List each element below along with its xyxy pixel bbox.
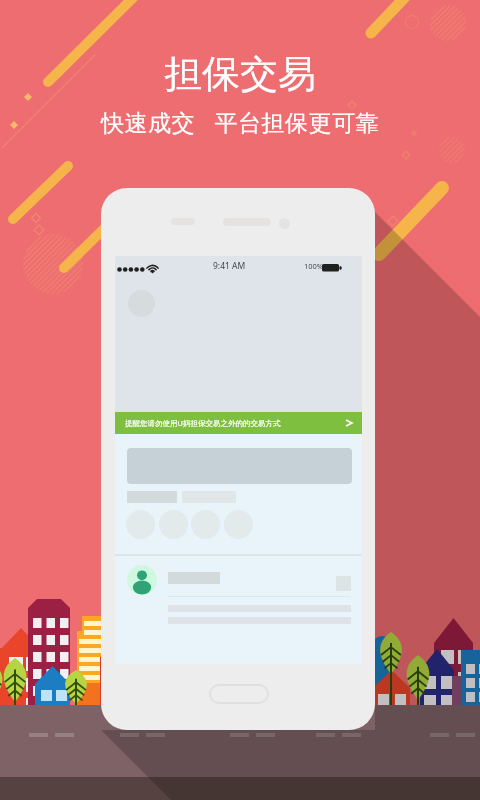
- staticText: 提醒您请勿使用U妈担保交易之外的的交易方式: [125, 418, 281, 428]
- staticText: 9:41 AM: [213, 260, 246, 272]
- staticText: 快速成交 平台担保更可靠: [101, 106, 379, 137]
- staticText: 担保交易: [164, 50, 316, 98]
- button[interactable]: 提醒您请勿使用U妈担保交易之外的的交易方式: [115, 412, 362, 434]
- staticText: 100%: [304, 261, 324, 271]
